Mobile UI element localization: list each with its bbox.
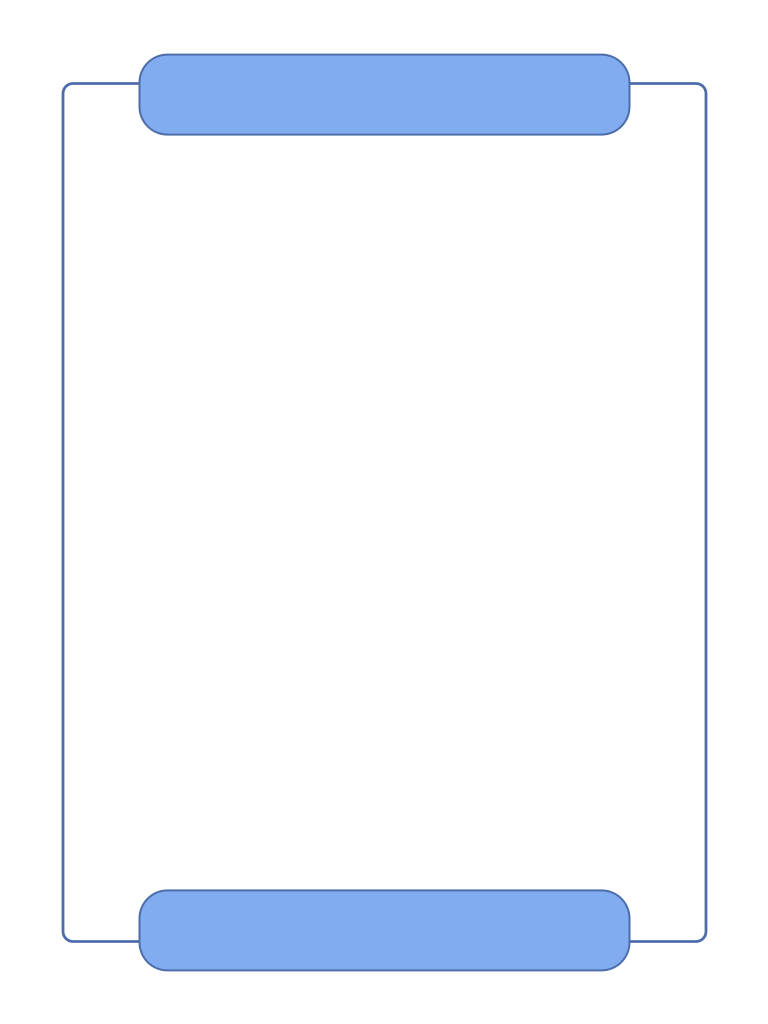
button[interactable]: Tab bar [139, 890, 629, 970]
button[interactable]: Navigation bar [139, 55, 629, 135]
